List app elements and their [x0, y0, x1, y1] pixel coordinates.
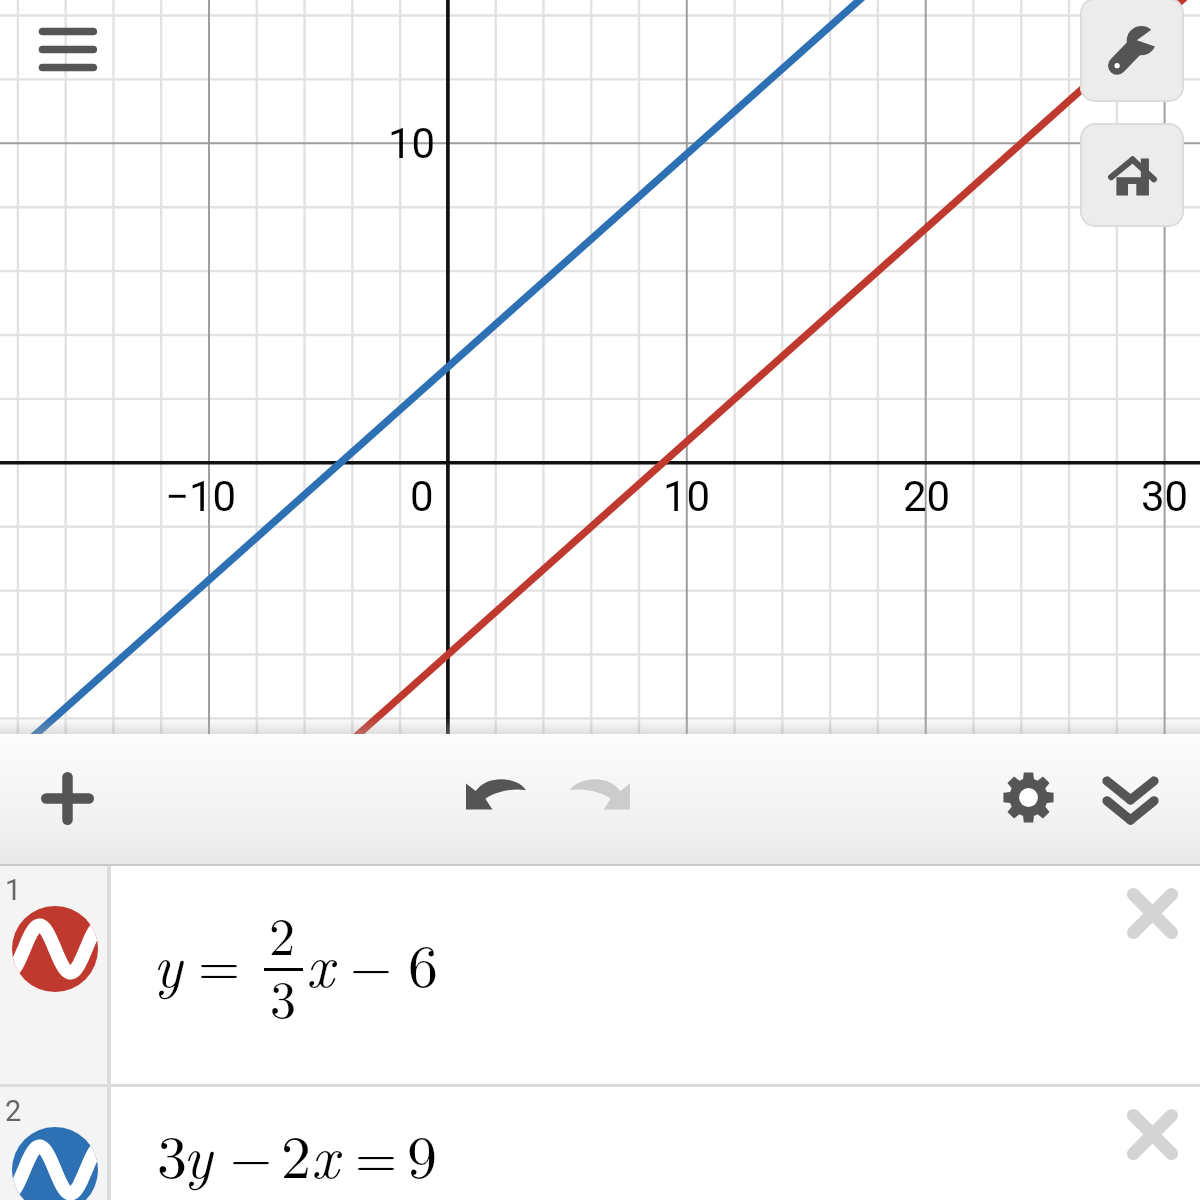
staticText: 1 — [5, 873, 22, 907]
staticText: 10 — [388, 119, 436, 168]
staticText: 2 — [269, 896, 296, 970]
button[interactable]: Delete expression — [1110, 871, 1194, 955]
staticText: 2 — [5, 1094, 22, 1128]
staticText: −10 — [165, 472, 237, 521]
staticText: − — [230, 1116, 273, 1193]
button[interactable]: Menu — [28, 14, 108, 86]
button[interactable]: Graph settings — [984, 753, 1072, 841]
staticText: x — [311, 1110, 339, 1195]
staticText: = — [355, 1116, 398, 1193]
button[interactable]: Toggle graph — [12, 906, 98, 992]
staticText: 9 — [407, 1110, 437, 1195]
staticText: x — [306, 919, 334, 1004]
staticText: 10 — [663, 472, 711, 521]
staticText: y — [183, 1110, 213, 1195]
button[interactable]: Undo — [452, 749, 540, 837]
button[interactable]: Redo — [556, 749, 644, 837]
staticText: 20 — [903, 472, 951, 521]
button[interactable]: Toggle graph — [12, 1127, 98, 1200]
button[interactable]: Home — [1080, 123, 1184, 227]
button[interactable]: 1 — [0, 866, 1200, 1084]
button[interactable]: 2 — [0, 1087, 1200, 1200]
staticText: 30 — [1141, 472, 1189, 521]
staticText: − — [350, 925, 393, 1002]
button[interactable]: Collapse list — [1086, 756, 1174, 844]
staticText: 3 — [270, 959, 297, 1033]
staticText: 2 — [281, 1110, 311, 1195]
staticText: 6 — [408, 919, 438, 1004]
staticText: = — [198, 924, 241, 1001]
staticText: y — [153, 919, 183, 1004]
staticText: 3 — [157, 1110, 187, 1195]
button[interactable]: Add expression — [23, 754, 111, 842]
button[interactable]: Delete expression — [1110, 1092, 1194, 1176]
staticText: 0 — [410, 472, 434, 521]
button[interactable]: Settings — [1080, 0, 1184, 102]
